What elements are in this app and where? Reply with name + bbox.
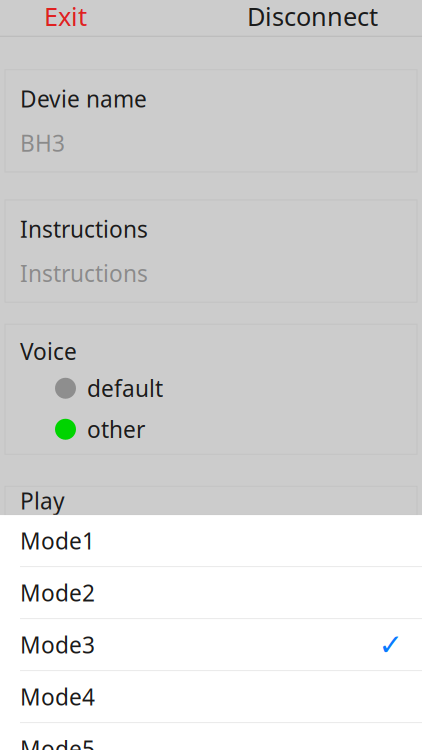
staticText: Devie name — [20, 84, 147, 114]
staticText: Mode4 — [20, 682, 95, 712]
staticText: Mode2 — [20, 578, 95, 608]
staticText: Instructions — [20, 258, 148, 288]
staticText: other — [87, 414, 145, 444]
staticText: Exit — [44, 0, 87, 33]
button[interactable]: Mode1 — [0, 515, 422, 566]
staticText: BH3 — [20, 128, 65, 158]
staticText: default — [87, 373, 163, 403]
button[interactable]: default — [20, 373, 402, 403]
button[interactable]: Mode2 — [0, 567, 422, 618]
staticText: Mode3 — [20, 630, 95, 660]
button[interactable]: Disconnect — [233, 0, 392, 40]
button[interactable]: Mode5 — [0, 723, 422, 750]
button[interactable]: Mode3 — [0, 619, 422, 670]
button[interactable]: Mode4 — [0, 671, 422, 722]
staticText: ✓ — [378, 628, 403, 661]
staticText: Voice — [20, 336, 77, 366]
staticText: Disconnect — [247, 0, 378, 33]
button[interactable]: other — [20, 414, 402, 444]
staticText: Mode1 — [20, 526, 95, 556]
staticText: Play — [20, 486, 65, 516]
staticText: Instructions — [20, 214, 148, 244]
staticText: Mode5 — [20, 734, 95, 750]
button[interactable]: Exit — [30, 0, 101, 40]
